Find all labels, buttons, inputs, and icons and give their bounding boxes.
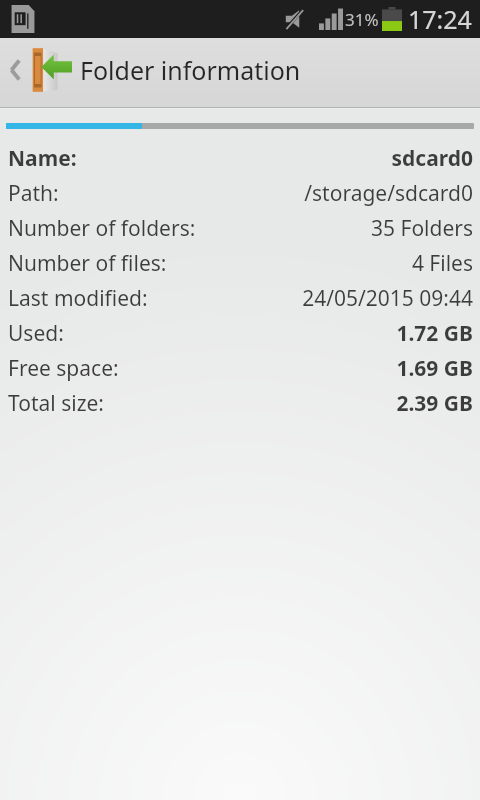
staticText: 1.69 GB bbox=[127, 354, 473, 383]
staticText: Used: bbox=[8, 319, 64, 348]
button[interactable]: Number of folders: bbox=[0, 211, 480, 246]
staticText: 35 Folders bbox=[204, 214, 473, 243]
staticText: Name: bbox=[8, 144, 77, 173]
button[interactable]: Used: bbox=[0, 316, 480, 351]
staticText: Number of folders: bbox=[8, 214, 196, 243]
staticText: Folder information bbox=[80, 53, 301, 87]
staticText: Number of files: bbox=[8, 249, 167, 278]
staticText: 4 Files bbox=[175, 249, 473, 278]
staticText: 31% bbox=[345, 8, 379, 31]
button[interactable]: Path: bbox=[0, 176, 480, 211]
staticText: 1.72 GB bbox=[72, 319, 473, 348]
staticText: 17:24 bbox=[408, 2, 472, 36]
staticText: 24/05/2015 09:44 bbox=[156, 284, 473, 313]
button[interactable]: Navigate up bbox=[4, 38, 76, 102]
button[interactable]: Free space: bbox=[0, 351, 480, 386]
staticText: Last modified: bbox=[8, 284, 148, 313]
staticText: Free space: bbox=[8, 354, 119, 383]
staticText: sdcard0 bbox=[85, 144, 473, 173]
button[interactable]: Number of files: bbox=[0, 246, 480, 281]
staticText: /storage/sdcard0 bbox=[67, 179, 473, 208]
button[interactable]: Name: bbox=[0, 141, 480, 176]
staticText: Total size: bbox=[8, 389, 104, 418]
staticText: Path: bbox=[8, 179, 59, 208]
staticText: 2.39 GB bbox=[112, 389, 473, 418]
button[interactable]: Last modified: bbox=[0, 281, 480, 316]
button[interactable]: Total size: bbox=[0, 386, 480, 421]
